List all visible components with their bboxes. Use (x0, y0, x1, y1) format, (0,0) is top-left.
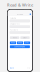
button[interactable]: Save Changes (10, 45, 30, 48)
button[interactable]: Sync (24, 41, 30, 44)
staticText: Sync (25, 42, 29, 44)
staticText: Read & Write (7, 2, 33, 8)
staticText: Clear (23, 37, 27, 39)
staticText: Email address (10, 23, 20, 25)
staticText: Read (11, 42, 15, 44)
button[interactable]: Write (17, 41, 23, 44)
staticText: Write (18, 42, 22, 44)
button[interactable]: Clear (20, 36, 30, 39)
button[interactable]: Reset (10, 36, 19, 39)
staticText: Back (10, 67, 14, 69)
staticText: Save Changes (14, 46, 25, 48)
staticText: Password (10, 29, 18, 31)
staticText: Account (16, 13, 23, 15)
staticText: Reset (13, 37, 17, 39)
staticText: Full name (10, 17, 16, 19)
button[interactable]: Add (30, 11, 32, 15)
button[interactable]: Read (10, 41, 16, 44)
button[interactable]: Back (10, 67, 14, 69)
